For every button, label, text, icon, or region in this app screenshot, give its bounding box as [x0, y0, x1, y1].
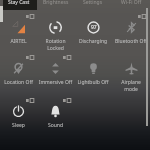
button[interactable]: Rotation Locked: [37, 12, 74, 53]
button[interactable]: Wi-Fi Off: [112, 0, 150, 11]
button[interactable]: AIRTEL: [0, 12, 37, 53]
button[interactable]: Airplane mode: [112, 53, 150, 96]
staticText: Immersive Off: [37, 79, 74, 86]
staticText: Lightbulb Off: [74, 79, 112, 86]
staticText: AIRTEL: [0, 38, 37, 45]
button[interactable]: Location Off: [0, 53, 37, 96]
button[interactable]: Sound: [37, 96, 74, 137]
staticText: Bluetooth Off: [112, 38, 150, 45]
staticText: Discharging: [74, 38, 112, 45]
staticText: Stay Cast: [8, 0, 30, 6]
button[interactable]: Settings: [74, 0, 112, 11]
staticText: Settings: [83, 0, 103, 6]
staticText: 97: [91, 24, 97, 31]
button[interactable]: [3, 0, 37, 10]
button[interactable]: Sleep: [0, 96, 37, 137]
staticText: Sound: [37, 122, 74, 129]
staticText: Brightness: [43, 0, 69, 6]
button[interactable]: Lightbulb Off: [74, 53, 112, 96]
staticText: Sleep: [0, 122, 37, 129]
staticText: Airplane mode: [112, 79, 150, 92]
button[interactable]: Immersive Off: [37, 53, 74, 96]
staticText: Rotation Locked: [37, 38, 74, 51]
button[interactable]: 97: [74, 12, 112, 53]
button[interactable]: Brightness: [37, 0, 74, 11]
staticText: Wi-Fi Off: [121, 0, 142, 6]
staticText: Location Off: [0, 79, 37, 86]
button[interactable]: Bluetooth Off: [112, 12, 150, 53]
button[interactable]: Stay Cast: [0, 0, 37, 11]
